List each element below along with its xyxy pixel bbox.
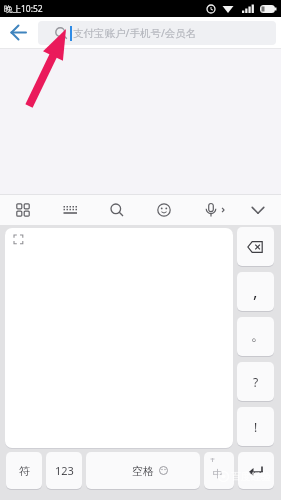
button[interactable]: 中 [204, 452, 234, 489]
staticText: ! [254, 419, 258, 435]
button[interactable]: 123 [46, 452, 82, 489]
button[interactable] [187, 195, 234, 225]
staticText: 空格 [132, 464, 154, 478]
button[interactable] [140, 195, 187, 225]
staticText: 123 [55, 463, 74, 478]
button[interactable] [4, 18, 33, 47]
button[interactable]: ! [237, 407, 274, 446]
button[interactable] [238, 452, 274, 489]
staticText: 中 [213, 467, 223, 480]
button[interactable]: ? [237, 362, 274, 401]
button[interactable]: 。 [237, 317, 274, 356]
button[interactable] [237, 227, 274, 266]
button[interactable]: 空格 [86, 452, 200, 489]
staticText: ? [253, 374, 259, 390]
staticText: 。 [251, 327, 265, 345]
button[interactable]: 符 [6, 452, 42, 489]
button[interactable] [234, 195, 281, 225]
button[interactable]: 支付宝账户/手机号/会员名 [55, 21, 276, 45]
staticText: 支付宝账户/手机号/会员名 [73, 26, 197, 40]
button[interactable] [93, 195, 140, 225]
staticText: , [253, 280, 258, 303]
button[interactable] [0, 195, 46, 225]
button[interactable] [46, 195, 93, 225]
staticText: 晚上10:52 [4, 3, 43, 15]
button[interactable]: , [237, 272, 274, 311]
staticText: 百度经验 [231, 470, 271, 483]
staticText: 符 [19, 464, 30, 478]
